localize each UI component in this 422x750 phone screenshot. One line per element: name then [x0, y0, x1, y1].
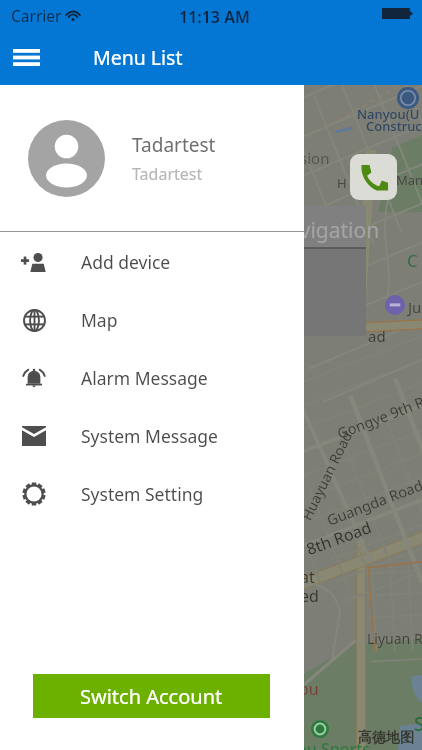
staticText: ou Sports [297, 738, 371, 750]
button[interactable]: System Message [0, 407, 304, 465]
staticText: 8th Road [303, 516, 375, 560]
staticText: Map [81, 308, 118, 332]
staticText: Nanyou(U [357, 105, 420, 123]
staticText: Add device [81, 250, 171, 274]
staticText: System Setting [81, 482, 204, 506]
staticText: Alarm Message [81, 366, 208, 390]
staticText: Construct [366, 117, 422, 135]
staticText: Liyuan Ro [367, 629, 422, 648]
staticText: C [407, 249, 418, 272]
button[interactable]: Open navigation drawer [0, 30, 52, 85]
staticText: Navigation [272, 216, 380, 245]
staticText: S [414, 711, 422, 737]
staticText: Gongye 9th Roa [334, 385, 422, 443]
staticText: Menu List [93, 44, 183, 71]
staticText: Ju [408, 297, 422, 317]
staticText: System Message [81, 424, 218, 448]
button[interactable]: Tadartest [0, 85, 304, 231]
staticText: ou [299, 678, 319, 700]
staticText: Tadartest [132, 163, 203, 185]
button[interactable]: Call [350, 154, 397, 200]
button[interactable]: Map [0, 291, 304, 349]
staticText: 高德地图 [358, 729, 414, 747]
staticText: Switch Account [80, 683, 223, 710]
button[interactable]: Switch Account [33, 674, 270, 718]
staticText: Huayuan Road [297, 428, 356, 523]
button[interactable]: System Setting [0, 465, 304, 523]
staticText: Mans [396, 171, 422, 189]
button[interactable]: Alarm Message [0, 349, 304, 407]
staticText: Tadartest [132, 132, 216, 158]
button[interactable]: Add device [0, 233, 304, 291]
staticText: sion [300, 148, 330, 168]
staticText: at [300, 566, 315, 588]
staticText: 11:13 AM [179, 6, 250, 28]
staticText: ad [368, 326, 386, 346]
staticText: Carrier [11, 5, 62, 26]
staticText: ed [300, 585, 319, 607]
staticText: Guangda Road [324, 474, 422, 530]
staticText: H [337, 174, 347, 192]
